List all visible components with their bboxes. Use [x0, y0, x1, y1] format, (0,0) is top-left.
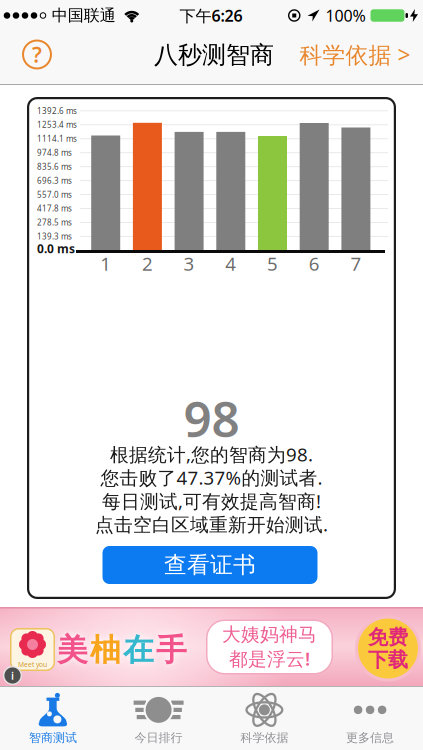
- staticText: 大姨妈神马: [222, 623, 317, 646]
- staticText: 点击空白区域重新开始测试.: [95, 512, 328, 537]
- button[interactable]: 更多信息: [317, 689, 423, 749]
- staticText: 6: [309, 251, 320, 276]
- staticText: 更多信息: [346, 730, 394, 745]
- staticText: 柚: [90, 631, 121, 669]
- staticText: 278.5 ms: [37, 217, 72, 228]
- staticText: 98: [183, 385, 239, 451]
- staticText: 557.0 ms: [37, 189, 72, 200]
- staticText: 八秒测智商: [154, 40, 274, 70]
- button[interactable]: 帮助: [18, 35, 56, 73]
- staticText: 4: [225, 251, 236, 276]
- staticText: 835.6 ms: [37, 161, 72, 172]
- staticText: 1253.4 ms: [37, 119, 77, 130]
- staticText: ?: [32, 40, 42, 69]
- button[interactable]: 科学依据 >: [295, 35, 414, 73]
- staticText: 今日排行: [135, 730, 183, 745]
- staticText: 您击败了47.37%的测试者.: [100, 465, 322, 490]
- staticText: 在: [123, 631, 154, 669]
- staticText: 3: [184, 251, 195, 276]
- button[interactable]: 今日排行: [106, 689, 211, 749]
- staticText: 0.0 ms: [37, 240, 75, 256]
- staticText: 中国联通: [52, 6, 116, 25]
- button[interactable]: 科学依据: [211, 689, 317, 749]
- staticText: 696.3 ms: [37, 175, 72, 186]
- button[interactable]: 智商测试: [0, 689, 106, 749]
- staticText: i: [11, 668, 14, 683]
- staticText: 科学依据: [240, 730, 288, 745]
- button[interactable]: 广告: 美柚在手 免费下载: [0, 607, 423, 686]
- staticText: Meet you: [18, 660, 47, 669]
- staticText: 下午6:26: [179, 5, 242, 26]
- staticText: 科学依据 >: [299, 39, 410, 69]
- button[interactable]: 广告信息: [3, 666, 22, 685]
- staticText: 5: [267, 251, 278, 276]
- staticText: 1392.6 ms: [37, 105, 77, 116]
- staticText: 417.8 ms: [37, 203, 72, 214]
- button[interactable]: 查看证书: [102, 546, 317, 584]
- staticText: 美: [57, 631, 88, 669]
- staticText: 下载: [368, 647, 408, 672]
- staticText: 139.3 ms: [37, 231, 72, 242]
- staticText: 免费: [368, 625, 408, 649]
- staticText: 查看证书: [164, 551, 256, 579]
- staticText: 都是浮云!: [229, 646, 310, 671]
- staticText: 974.8 ms: [37, 147, 72, 158]
- staticText: 2: [142, 251, 153, 276]
- staticText: 根据统计,您的智商为98.: [110, 442, 313, 467]
- staticText: 每日测试,可有效提高智商!: [102, 488, 321, 513]
- staticText: 1114.1 ms: [37, 133, 77, 144]
- staticText: 1: [100, 251, 111, 276]
- staticText: 智商测试: [29, 730, 77, 745]
- staticText: 手: [156, 631, 187, 669]
- staticText: 7: [350, 251, 361, 276]
- staticText: 100%: [325, 5, 365, 26]
